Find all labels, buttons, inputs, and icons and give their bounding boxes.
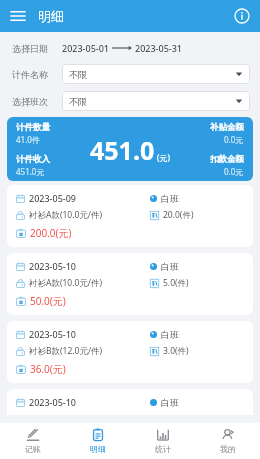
button[interactable]: 不限 <box>62 64 250 84</box>
staticText: 2023-05-01 <box>62 42 109 54</box>
staticText: 统计 <box>155 444 171 454</box>
button[interactable]: 不限 <box>62 91 250 111</box>
staticText: 计件收入 <box>16 154 50 165</box>
staticText: 计件名称 <box>12 69 48 80</box>
staticText: 衬衫A款(10.0元/件) <box>29 209 103 221</box>
staticText: 白班 <box>161 397 179 408</box>
button[interactable]: 2023-05-10 <box>7 389 253 415</box>
button[interactable]: 记账 <box>0 423 65 459</box>
staticText: 不限 <box>69 96 235 107</box>
button[interactable]: 明细 <box>65 423 130 459</box>
staticText: 选择班次 <box>12 96 48 107</box>
staticText: 不限 <box>69 69 235 80</box>
staticText: (元) <box>157 152 170 163</box>
staticText: 2023-05-10 <box>29 260 76 272</box>
staticText: 2023-05-10 <box>29 396 76 408</box>
staticText: 451.0 <box>90 133 155 167</box>
staticText: 白班 <box>161 193 179 204</box>
button[interactable]: 451.0 <box>7 117 253 181</box>
staticText: 白班 <box>161 261 179 272</box>
staticText: 2023-05-09 <box>29 192 76 204</box>
button[interactable]: 2023-05-09 <box>7 185 253 247</box>
staticText: 36.0(元) <box>30 362 66 376</box>
staticText: 扣款金额 <box>210 154 244 165</box>
staticText: 选择日期 <box>12 43 48 54</box>
button[interactable]: 选择日期 <box>0 38 260 58</box>
staticText: 明细 <box>90 444 106 454</box>
staticText: 2023-05-31 <box>135 42 182 54</box>
staticText: 3.0(件) <box>163 345 189 357</box>
staticText: 2023-05-10 <box>29 328 76 340</box>
staticText: 衬衫A款(10.0元/件) <box>29 277 103 289</box>
staticText: 200.0(元) <box>30 226 72 240</box>
staticText: 白班 <box>161 329 179 340</box>
button[interactable]: Info <box>232 6 252 26</box>
staticText: 明细 <box>38 8 64 24</box>
staticText: 20.0(件) <box>163 209 194 221</box>
button[interactable]: 2023-05-10 <box>7 253 253 315</box>
staticText: 0.0元 <box>224 166 244 177</box>
staticText: 记账 <box>25 444 41 454</box>
staticText: 补贴金额 <box>210 122 244 133</box>
button[interactable]: 2023-05-10 <box>7 321 253 383</box>
staticText: 50.0(元) <box>30 294 66 308</box>
staticText: 5.0(件) <box>163 277 189 289</box>
staticText: 我的 <box>220 444 236 454</box>
staticText: 0.0元 <box>224 134 244 145</box>
staticText: 衬衫B款(12.0元/件) <box>29 345 103 357</box>
staticText: 41.0件 <box>16 134 40 145</box>
button[interactable]: 统计 <box>130 423 195 459</box>
staticText: 计件数量 <box>16 122 50 133</box>
button[interactable]: Menu <box>8 6 28 26</box>
button[interactable]: 我的 <box>195 423 260 459</box>
staticText: 451.0元 <box>16 166 45 177</box>
